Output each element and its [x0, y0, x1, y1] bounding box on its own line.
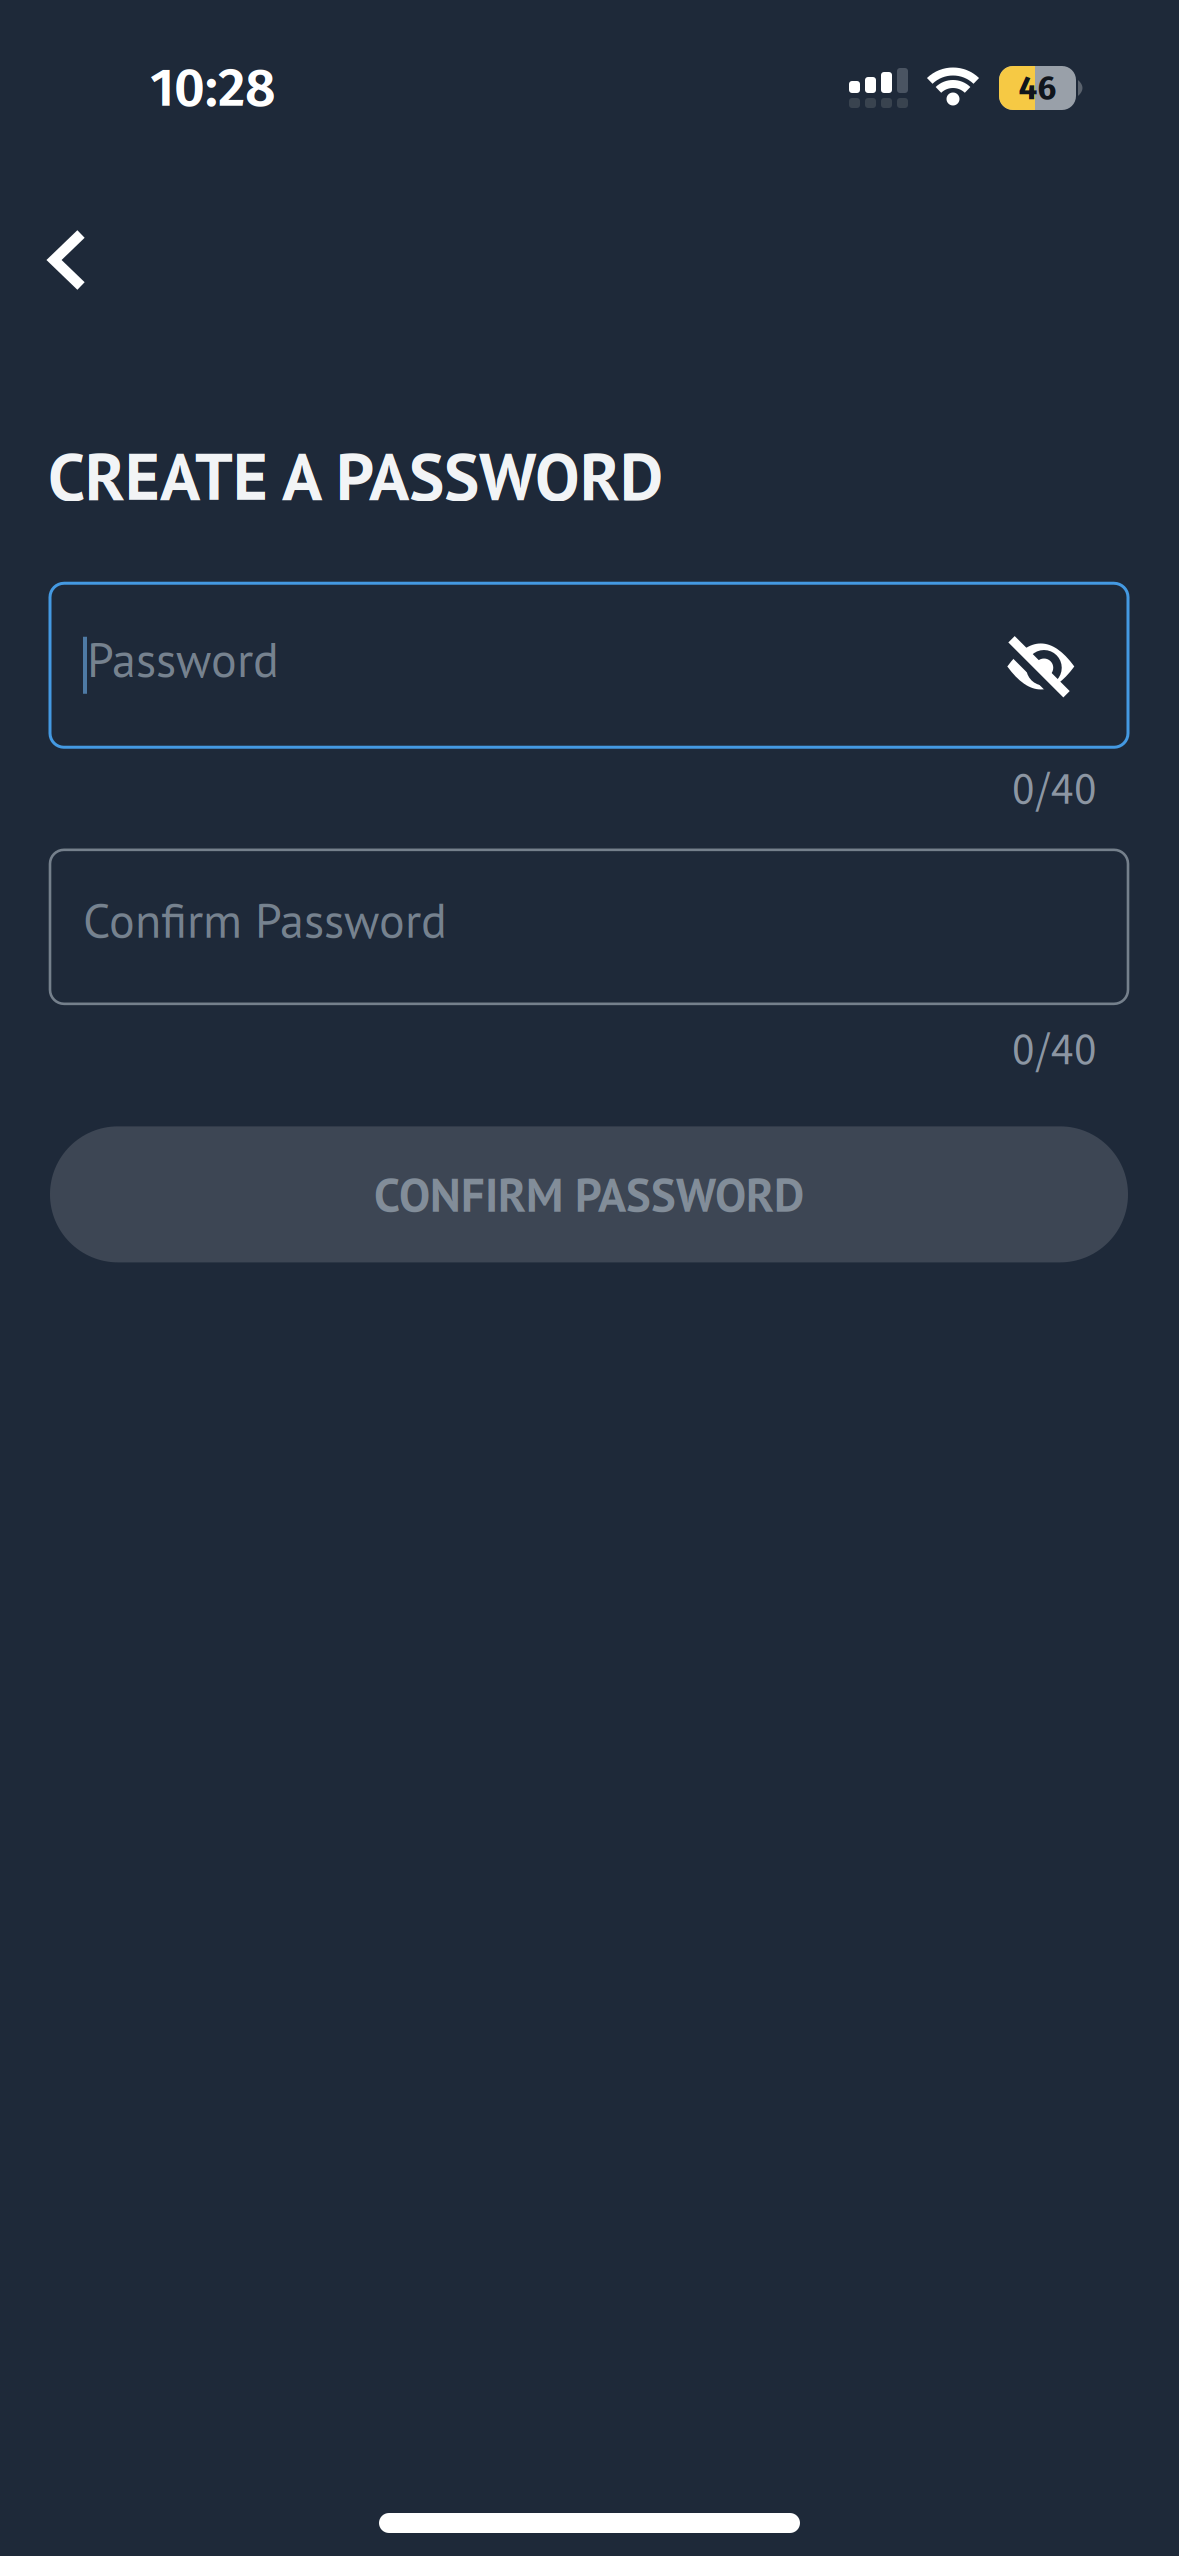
button[interactable]: Show password: [1008, 630, 1078, 700]
button[interactable]: CONFIRM PASSWORD: [50, 1126, 1128, 1262]
staticText: 0/40: [1012, 757, 1097, 822]
staticText: 10:28: [150, 56, 276, 120]
staticText: CREATE A PASSWORD: [48, 432, 663, 518]
staticText: 0/40: [1012, 1018, 1097, 1082]
staticText: CONFIRM PASSWORD: [374, 1164, 804, 1225]
staticText: Password: [87, 628, 279, 690]
staticText: 46: [1018, 68, 1056, 108]
button[interactable]: Back: [49, 229, 86, 291]
staticText: Confirm Password: [83, 889, 447, 951]
